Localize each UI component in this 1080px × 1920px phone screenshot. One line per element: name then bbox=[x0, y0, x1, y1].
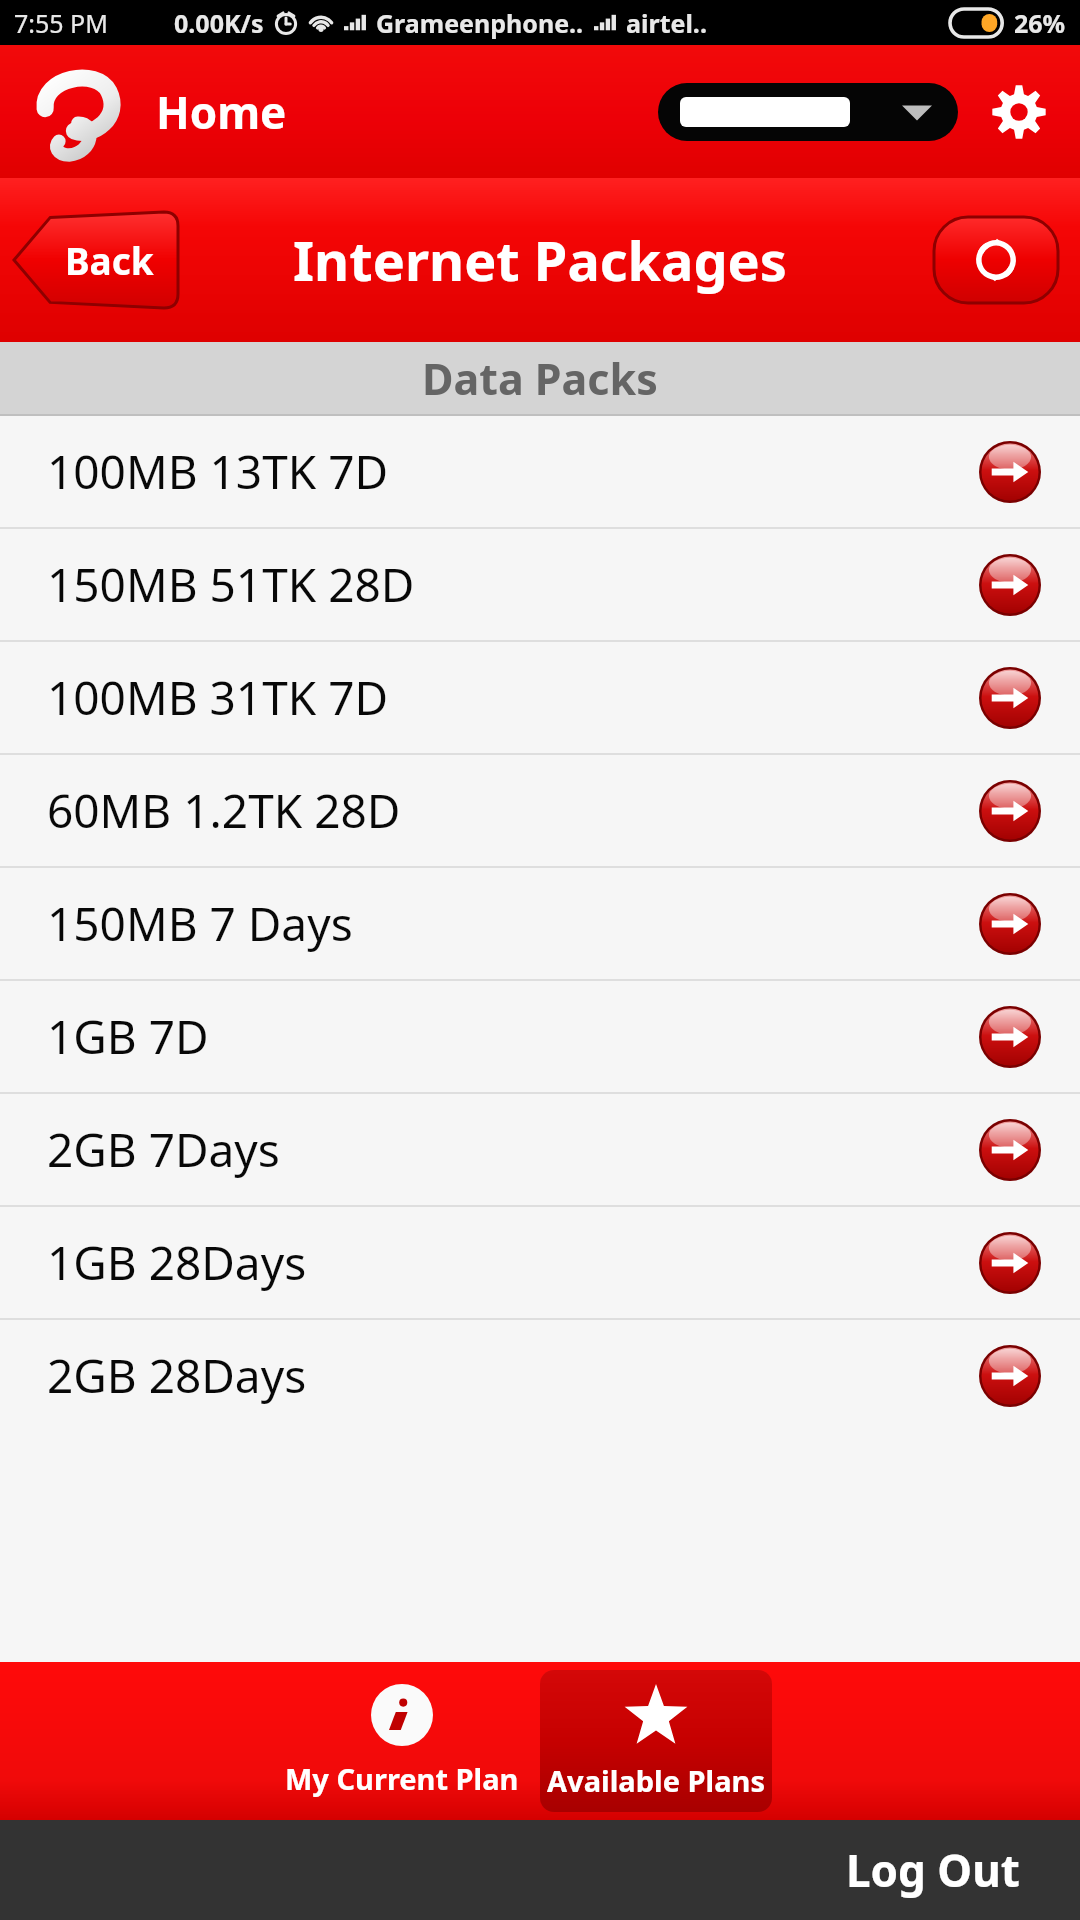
button[interactable]: 1GB 7D bbox=[0, 981, 1080, 1092]
staticText: Back bbox=[65, 235, 154, 285]
staticText: airtel.. bbox=[626, 6, 707, 40]
button[interactable]: Settings bbox=[986, 79, 1052, 145]
staticText: 0.00K/s bbox=[174, 6, 264, 40]
button[interactable]: 100MB 31TK 7D bbox=[0, 642, 1080, 753]
button[interactable]: 1GB 28Days bbox=[0, 1207, 1080, 1318]
staticText: Grameenphone.. bbox=[376, 6, 584, 40]
staticText: 100MB 13TK 7D bbox=[47, 440, 978, 503]
staticText: 2GB 7Days bbox=[47, 1118, 978, 1181]
staticText: 1GB 7D bbox=[47, 1005, 978, 1068]
button[interactable]: Log Out bbox=[0, 1820, 1080, 1920]
button[interactable]: 2GB 7Days bbox=[0, 1094, 1080, 1205]
button[interactable]: 2GB 28Days bbox=[0, 1320, 1080, 1431]
staticText: Internet Packages bbox=[293, 223, 787, 297]
button[interactable]: Back bbox=[14, 212, 178, 308]
staticText: 60MB 1.2TK 28D bbox=[47, 779, 978, 842]
staticText: My Current Plan bbox=[285, 1759, 519, 1798]
button[interactable]: Available Plans bbox=[540, 1670, 772, 1812]
button[interactable]: My Current Plan bbox=[264, 1662, 540, 1820]
staticText: Available Plans bbox=[547, 1761, 765, 1800]
button[interactable]: 150MB 51TK 28D bbox=[0, 529, 1080, 640]
staticText: Home bbox=[156, 82, 287, 142]
staticText: 7:55 PM bbox=[14, 6, 108, 40]
button[interactable]: 100MB 13TK 7D bbox=[0, 416, 1080, 527]
staticText: Log Out bbox=[846, 1840, 1020, 1900]
staticText: 150MB 51TK 28D bbox=[47, 553, 978, 616]
staticText: 150MB 7 Days bbox=[47, 892, 978, 955]
staticText: 100MB 31TK 7D bbox=[47, 666, 978, 729]
button[interactable]: Select account bbox=[658, 83, 958, 141]
staticText: 1GB 28Days bbox=[47, 1231, 978, 1294]
button[interactable]: 150MB 7 Days bbox=[0, 868, 1080, 979]
button[interactable]: Refresh bbox=[934, 217, 1058, 303]
button[interactable]: 60MB 1.2TK 28D bbox=[0, 755, 1080, 866]
staticText: 26% bbox=[1014, 6, 1066, 40]
staticText: 2GB 28Days bbox=[47, 1344, 978, 1407]
staticText: Data Packs bbox=[422, 349, 658, 408]
